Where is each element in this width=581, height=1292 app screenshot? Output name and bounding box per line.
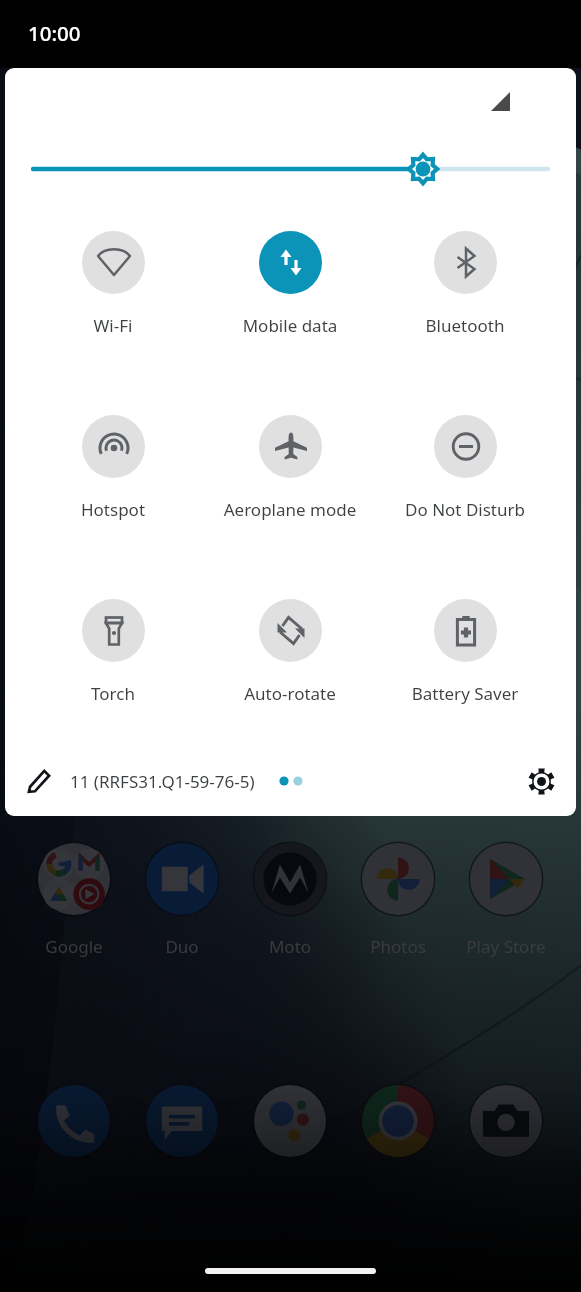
staticText: Play Store — [452, 935, 560, 958]
staticText: 10:00 — [28, 19, 81, 47]
button[interactable]: Settings — [517, 757, 565, 805]
button[interactable]: Bluetooth — [380, 231, 550, 337]
staticText: Mobile data — [205, 314, 375, 337]
staticText: Torch — [28, 682, 198, 705]
button[interactable] — [20, 843, 128, 958]
staticText: Do Not Disturb — [380, 498, 550, 521]
button[interactable] — [470, 1085, 542, 1157]
button[interactable]: Battery Saver — [380, 599, 550, 705]
staticText: Duo — [128, 935, 236, 958]
button[interactable]: Aeroplane mode — [205, 415, 375, 521]
button[interactable]: Auto-rotate — [205, 599, 375, 705]
button[interactable]: Brightness — [5, 139, 576, 199]
button[interactable]: Hotspot — [28, 415, 198, 521]
staticText: Auto-rotate — [205, 682, 375, 705]
button[interactable]: Edit tiles — [17, 759, 61, 803]
button[interactable] — [128, 843, 236, 958]
button[interactable] — [236, 843, 344, 958]
button[interactable] — [254, 1085, 326, 1157]
button[interactable] — [344, 843, 452, 958]
staticText: Moto — [236, 935, 344, 958]
staticText: Photos — [344, 935, 452, 958]
button[interactable] — [38, 1085, 110, 1157]
staticText: Aeroplane mode — [205, 498, 375, 521]
button[interactable]: Torch — [28, 599, 198, 705]
button[interactable] — [146, 1085, 218, 1157]
staticText: Battery Saver — [380, 682, 550, 705]
button[interactable] — [452, 843, 560, 958]
button[interactable]: Wi-Fi — [28, 231, 198, 337]
button[interactable]: Do Not Disturb — [380, 415, 550, 521]
button[interactable] — [362, 1085, 434, 1157]
button[interactable]: Mobile data — [205, 231, 375, 337]
staticText: Wi-Fi — [28, 314, 198, 337]
staticText: Bluetooth — [380, 314, 550, 337]
staticText: Hotspot — [28, 498, 198, 521]
staticText: Google — [20, 935, 128, 958]
staticText: 11 (RRFS31.Q1-59-76-5) — [70, 770, 255, 793]
